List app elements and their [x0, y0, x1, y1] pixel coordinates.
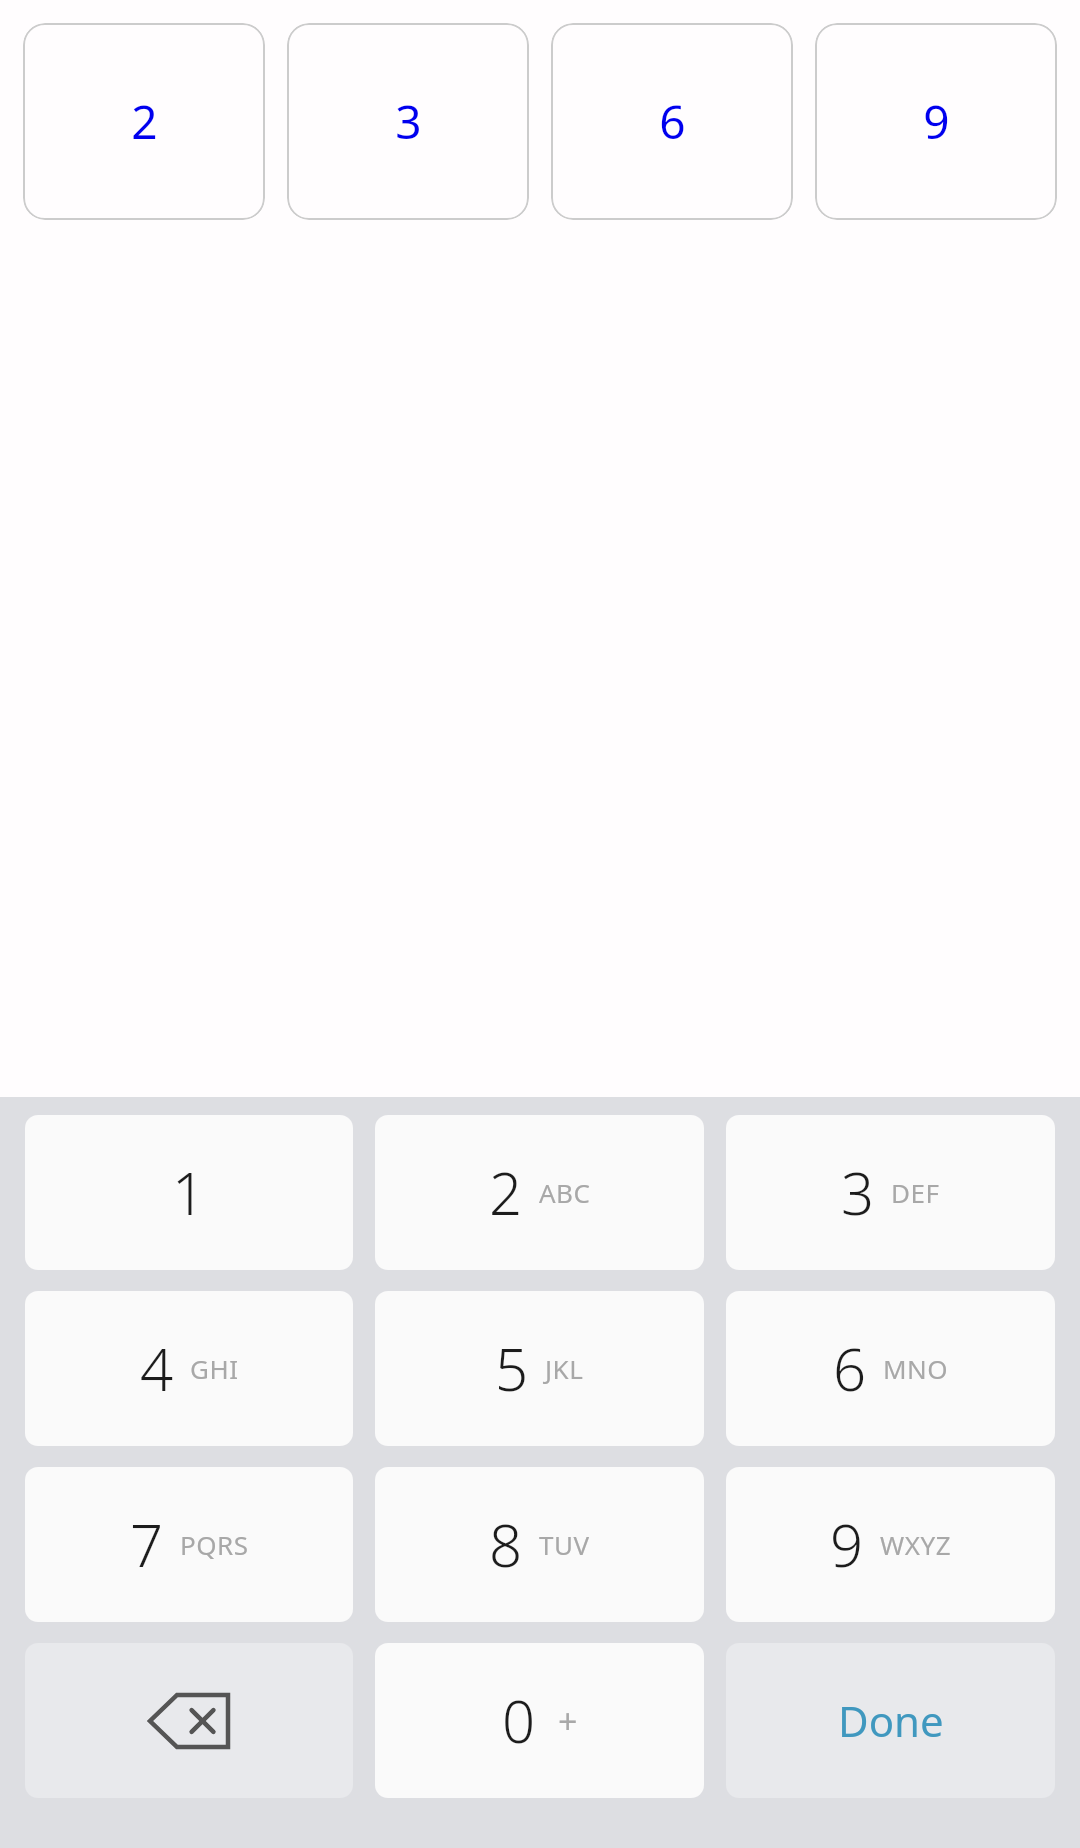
- staticText: 2: [131, 90, 158, 153]
- staticText: 4: [140, 1329, 174, 1408]
- button[interactable]: 9: [815, 23, 1057, 220]
- staticText: 9: [923, 90, 950, 153]
- staticText: 8: [489, 1505, 523, 1584]
- staticText: 0: [502, 1681, 536, 1760]
- staticText: PQRS: [180, 1527, 249, 1562]
- button[interactable]: 2: [23, 23, 265, 220]
- button[interactable]: 3: [726, 1115, 1055, 1270]
- staticText: +: [558, 1698, 578, 1744]
- staticText: 5: [495, 1329, 529, 1408]
- staticText: GHI: [190, 1351, 239, 1386]
- staticText: MNO: [883, 1351, 949, 1386]
- button[interactable]: 6: [551, 23, 793, 220]
- staticText: 6: [659, 90, 686, 153]
- button[interactable]: 3: [287, 23, 529, 220]
- staticText: 3: [395, 90, 422, 153]
- button[interactable]: Done: [726, 1643, 1055, 1798]
- button[interactable]: 6: [726, 1291, 1055, 1446]
- staticText: 6: [833, 1329, 867, 1408]
- staticText: ABC: [539, 1175, 591, 1210]
- button[interactable]: 0: [375, 1643, 704, 1798]
- button[interactable]: 2: [375, 1115, 704, 1270]
- button[interactable]: 9: [726, 1467, 1055, 1622]
- staticText: 1: [172, 1153, 206, 1232]
- button[interactable]: 1: [25, 1115, 353, 1270]
- button[interactable]: 4: [25, 1291, 353, 1446]
- button[interactable]: 8: [375, 1467, 704, 1622]
- button[interactable]: 7: [25, 1467, 353, 1622]
- staticText: 9: [830, 1505, 864, 1584]
- staticText: 7: [130, 1505, 164, 1584]
- staticText: WXYZ: [880, 1527, 952, 1562]
- staticText: TUV: [539, 1527, 590, 1562]
- button[interactable]: 5: [375, 1291, 704, 1446]
- staticText: 2: [489, 1153, 523, 1232]
- staticText: JKL: [545, 1351, 584, 1386]
- staticText: Done: [838, 1692, 944, 1749]
- button[interactable]: Delete: [25, 1643, 353, 1798]
- staticText: DEF: [891, 1175, 940, 1210]
- staticText: 3: [841, 1153, 875, 1232]
